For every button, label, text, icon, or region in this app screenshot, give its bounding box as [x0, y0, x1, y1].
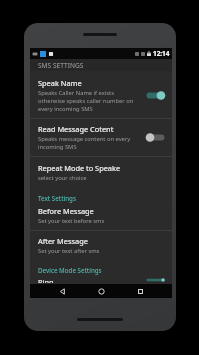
button[interactable]: Recent apps — [133, 284, 147, 298]
staticText: Read Message Cotent — [38, 124, 114, 134]
button[interactable]: Ring toggle — [144, 277, 167, 283]
staticText: Speaks Caller Name if exists otherwise s… — [38, 89, 141, 113]
staticText: Ring — [38, 277, 54, 283]
button[interactable]: SMS SETTINGS — [30, 59, 172, 71]
button[interactable]: Speak Name toggle — [144, 88, 167, 103]
button[interactable]: Ring — [30, 276, 172, 284]
button[interactable]: Read Message Cotent toggle — [144, 130, 167, 145]
staticText: Device Mode Settings — [38, 266, 102, 274]
button[interactable]: Back — [55, 284, 69, 298]
staticText: select your choice — [38, 174, 87, 182]
button[interactable]: After Message — [30, 231, 172, 260]
staticText: Set your text before sms — [38, 217, 105, 225]
button[interactable]: Read Message Cotent — [30, 119, 172, 156]
staticText: 12:14 — [153, 49, 170, 58]
staticText: Repeat Mode to Speake — [38, 163, 121, 173]
staticText: Text Settings — [38, 194, 76, 202]
staticText: SMS SETTINGS — [38, 61, 84, 70]
button[interactable]: Home — [94, 284, 108, 298]
staticText: Before Message — [38, 206, 94, 216]
button[interactable]: Repeat Mode to Speake — [30, 157, 172, 188]
staticText: Speak Name — [38, 78, 82, 88]
button[interactable]: Speak Name — [30, 74, 172, 118]
staticText: Set your text after sms — [38, 247, 100, 255]
staticText: After Message — [38, 236, 88, 246]
staticText: Speaks message content on every incoming… — [38, 135, 141, 151]
button[interactable]: Before Message — [30, 204, 172, 230]
